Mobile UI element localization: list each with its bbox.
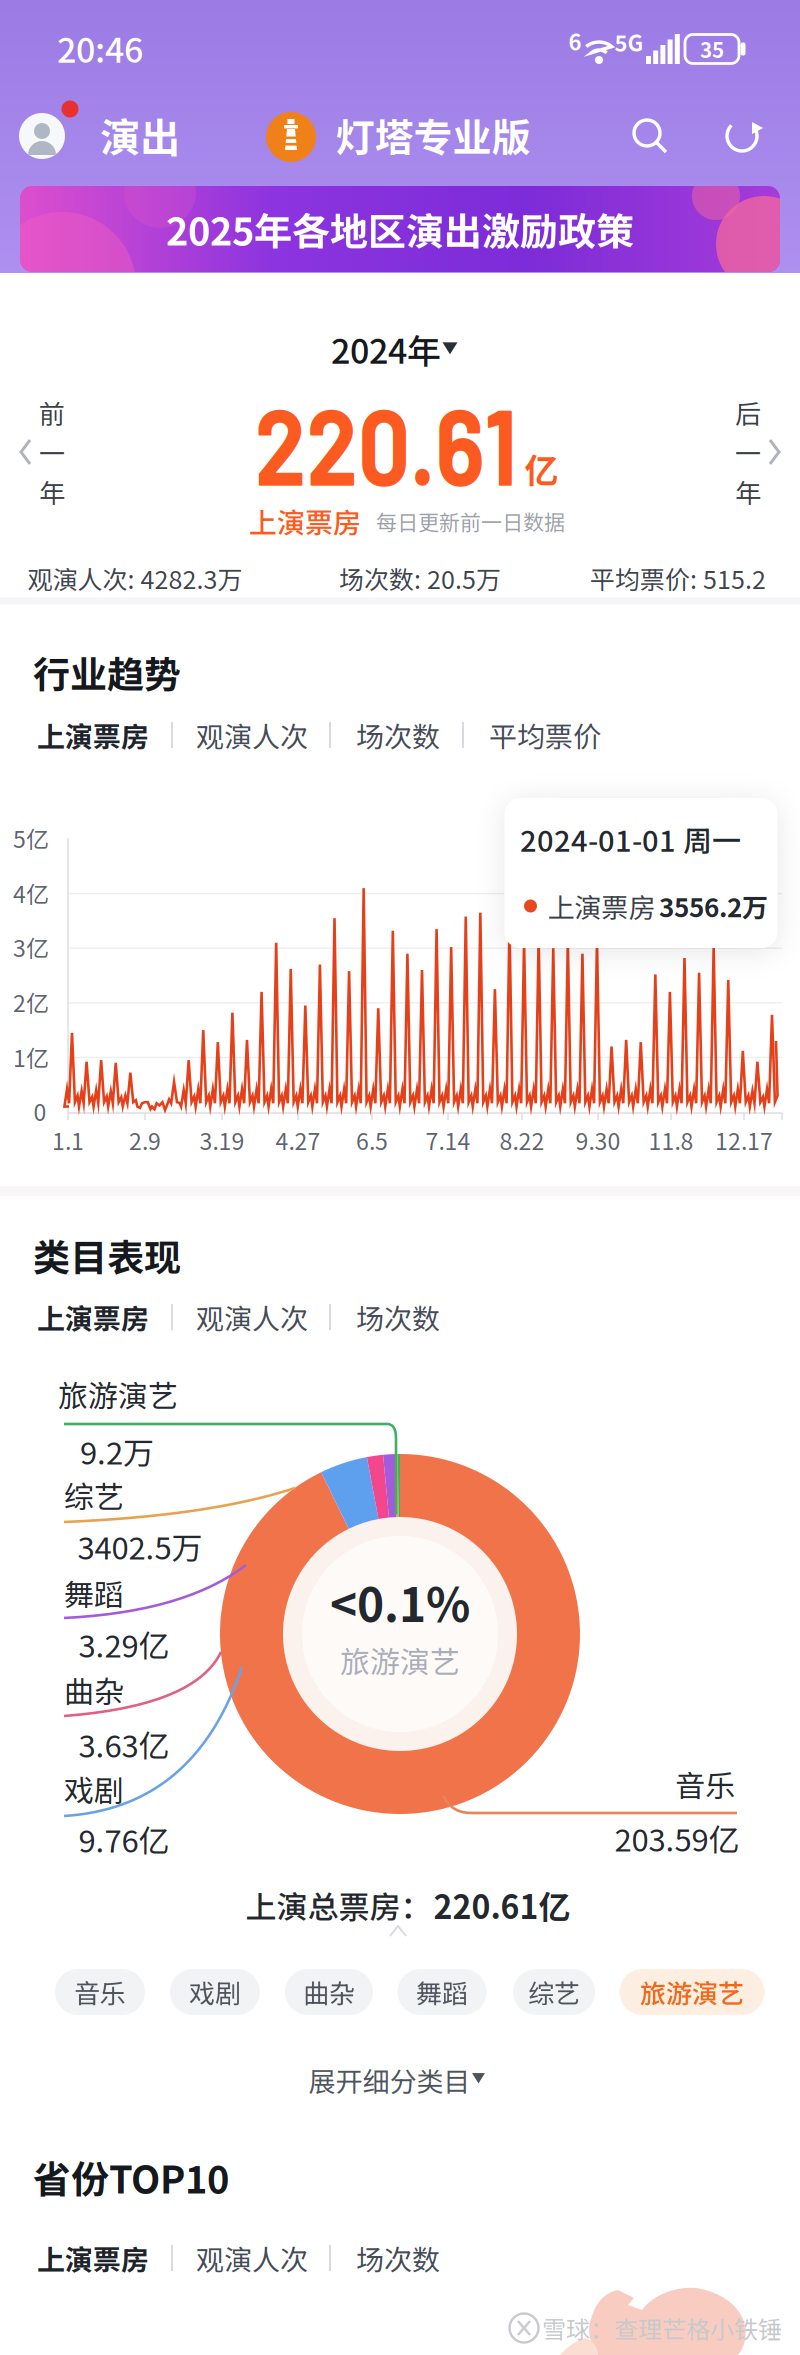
button[interactable]: 上演票房 xyxy=(37,1297,149,1337)
staticText: <0.1% xyxy=(330,1569,470,1635)
staticText: 35 xyxy=(700,34,724,64)
staticText: 展开细分类目 xyxy=(308,2060,470,2100)
staticText: 一 xyxy=(735,433,761,471)
staticText: 旅游演艺 xyxy=(640,1973,744,2011)
staticText: 场次数 xyxy=(356,1297,440,1337)
staticText: 4.27 xyxy=(275,1123,320,1157)
staticText: 3.29亿 xyxy=(78,1622,169,1666)
staticText: 一 xyxy=(39,433,65,471)
staticText: 舞蹈 xyxy=(416,1973,468,2011)
staticText: 场次数 xyxy=(356,715,440,755)
staticText: 音乐 xyxy=(74,1973,126,2011)
staticText: 演出 xyxy=(100,106,180,164)
staticText: 1.1 xyxy=(52,1123,84,1157)
staticText: 平均票价 xyxy=(489,715,601,755)
staticText: 20:46 xyxy=(57,23,143,73)
staticText: 2024年 xyxy=(331,324,441,374)
staticText: 5G xyxy=(614,26,643,58)
button[interactable]: 观演人次 xyxy=(196,2238,308,2278)
staticText: 12.17 xyxy=(715,1123,773,1157)
staticText: 年 xyxy=(735,473,761,510)
button[interactable]: 旅游演艺 xyxy=(619,1969,764,2015)
staticText: 旅游演艺 xyxy=(58,1372,178,1416)
button[interactable]: 音乐 xyxy=(55,1969,145,2015)
staticText: 戏剧 xyxy=(189,1973,241,2011)
staticText: 上演票房 xyxy=(249,501,361,541)
button[interactable]: 刷新 xyxy=(721,115,763,157)
staticText: 后 xyxy=(735,393,761,431)
staticText: 行业趋势 xyxy=(33,645,181,699)
button[interactable]: 2025年各地区演出激励政策 xyxy=(20,186,780,272)
staticText: 3.19 xyxy=(199,1123,244,1157)
button[interactable]: 后一年 xyxy=(735,393,781,510)
button[interactable]: 戏剧 xyxy=(170,1969,260,2015)
staticText: 2.9 xyxy=(129,1123,161,1157)
staticText: 3亿 xyxy=(13,930,49,964)
button[interactable]: 观演人次 xyxy=(196,1297,308,1337)
button[interactable]: 场次数 xyxy=(356,715,440,755)
staticText: 上演票房 xyxy=(37,715,149,755)
button[interactable]: 我的 xyxy=(19,113,65,159)
staticText: 7.14 xyxy=(425,1123,470,1157)
staticText: 6 xyxy=(568,25,581,57)
staticText: 9.30 xyxy=(575,1123,620,1157)
staticText: 9.2万 xyxy=(80,1429,154,1473)
staticText: 6.5 xyxy=(356,1123,388,1157)
staticText: 观演人次: 4282.3万 xyxy=(27,560,242,596)
staticText: 3.63亿 xyxy=(78,1722,169,1766)
staticText: 203.59亿 xyxy=(614,1816,739,1860)
button[interactable]: 场次数 xyxy=(356,1297,440,1337)
staticText: 观演人次 xyxy=(196,715,308,755)
staticText: 类目表现 xyxy=(33,1228,181,1282)
staticText: 上演票房 xyxy=(37,2238,149,2278)
staticText: 综艺 xyxy=(64,1473,124,1517)
staticText: 220.61亿 xyxy=(433,1882,570,1928)
staticText: 平均票价: 515.2 xyxy=(590,560,766,596)
staticText: 亿 xyxy=(524,444,558,493)
button[interactable]: 上演票房 xyxy=(37,2238,149,2278)
staticText: 11.8 xyxy=(648,1123,693,1157)
button[interactable]: 观演人次 xyxy=(196,715,308,755)
staticText: 曲杂 xyxy=(64,1668,124,1712)
staticText: 场次数 xyxy=(356,2238,440,2278)
staticText: 上演票房 xyxy=(547,886,655,926)
button[interactable]: 搜索 xyxy=(629,115,671,157)
staticText: 观演人次 xyxy=(196,2238,308,2278)
staticText: 2024-01-01 周一 xyxy=(520,818,741,860)
staticText: 年 xyxy=(39,473,65,510)
staticText: 0 xyxy=(33,1094,46,1128)
staticText: 每日更新前一日数据 xyxy=(376,506,565,536)
staticText: 2亿 xyxy=(13,985,49,1019)
button[interactable]: 2024年 xyxy=(331,324,465,374)
staticText: 上演票房 xyxy=(37,1297,149,1337)
staticText: 上演总票房： xyxy=(245,1883,431,1927)
staticText: 旅游演艺 xyxy=(340,1638,460,1682)
button[interactable]: 上演票房 xyxy=(37,715,149,755)
button[interactable]: 曲杂 xyxy=(285,1969,373,2015)
button[interactable]: 展开细分类目 xyxy=(308,2060,491,2100)
staticText: 雪球：查理芒格小铁锤 xyxy=(542,2311,782,2345)
staticText: 省份TOP10 xyxy=(33,2149,229,2204)
staticText: 2025年各地区演出激励政策 xyxy=(166,201,634,256)
staticText: 220.61 xyxy=(233,379,538,507)
staticText: 8.22 xyxy=(499,1123,544,1157)
staticText: 3402.5万 xyxy=(77,1524,202,1568)
button[interactable]: 前一年 xyxy=(19,393,65,510)
staticText: 1亿 xyxy=(13,1040,49,1074)
button[interactable]: 场次数 xyxy=(356,2238,440,2278)
staticText: 曲杂 xyxy=(303,1973,355,2011)
staticText: 戏剧 xyxy=(64,1767,124,1811)
staticText: 舞蹈 xyxy=(64,1571,124,1615)
button[interactable]: 综艺 xyxy=(513,1969,595,2015)
staticText: 4亿 xyxy=(13,876,49,910)
button[interactable]: 平均票价 xyxy=(489,715,601,755)
staticText: 观演人次 xyxy=(196,1297,308,1337)
staticText: 场次数: 20.5万 xyxy=(339,560,501,596)
staticText: 3556.2万 xyxy=(659,887,768,925)
staticText: 9.76亿 xyxy=(78,1817,169,1861)
staticText: 音乐 xyxy=(675,1762,735,1806)
button[interactable]: 舞蹈 xyxy=(397,1969,486,2015)
staticText: 综艺 xyxy=(528,1973,580,2011)
staticText: 5亿 xyxy=(13,821,49,855)
staticText: 灯塔专业版 xyxy=(335,107,530,163)
